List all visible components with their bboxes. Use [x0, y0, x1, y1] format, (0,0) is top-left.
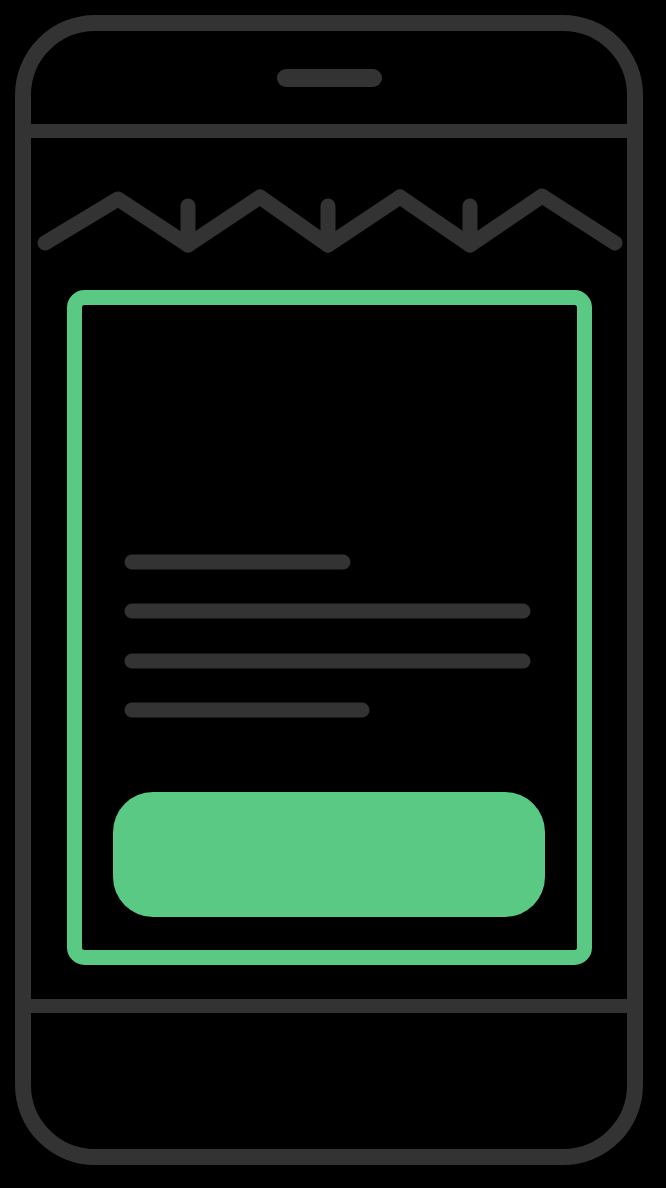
button[interactable]: Confirm payment: [113, 792, 545, 917]
